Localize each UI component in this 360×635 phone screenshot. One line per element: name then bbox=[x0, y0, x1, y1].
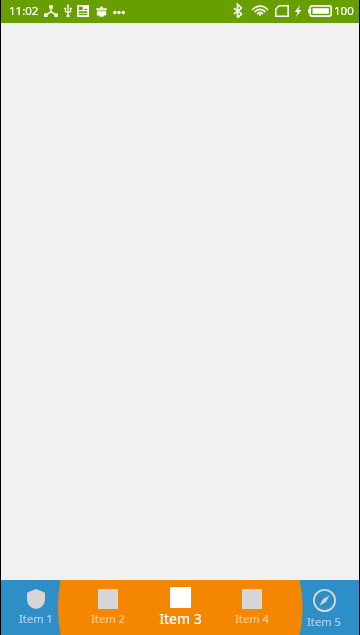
button[interactable]: Item 3 bbox=[144, 580, 216, 635]
button[interactable]: Item 2 bbox=[72, 580, 144, 635]
other: Explore bbox=[313, 589, 336, 612]
button[interactable]: Item 4 bbox=[216, 580, 288, 635]
staticText: Item 3 bbox=[159, 609, 202, 628]
staticText: 11:02 bbox=[9, 3, 39, 19]
staticText: 100 bbox=[334, 3, 354, 19]
staticText: Item 2 bbox=[91, 611, 125, 626]
other: Security bbox=[27, 589, 45, 609]
staticText: Item 1 bbox=[19, 611, 53, 626]
staticText: Item 5 bbox=[307, 614, 341, 629]
button[interactable]: Security bbox=[0, 580, 72, 635]
button[interactable]: Explore bbox=[288, 580, 360, 635]
staticText: Item 4 bbox=[235, 611, 269, 626]
